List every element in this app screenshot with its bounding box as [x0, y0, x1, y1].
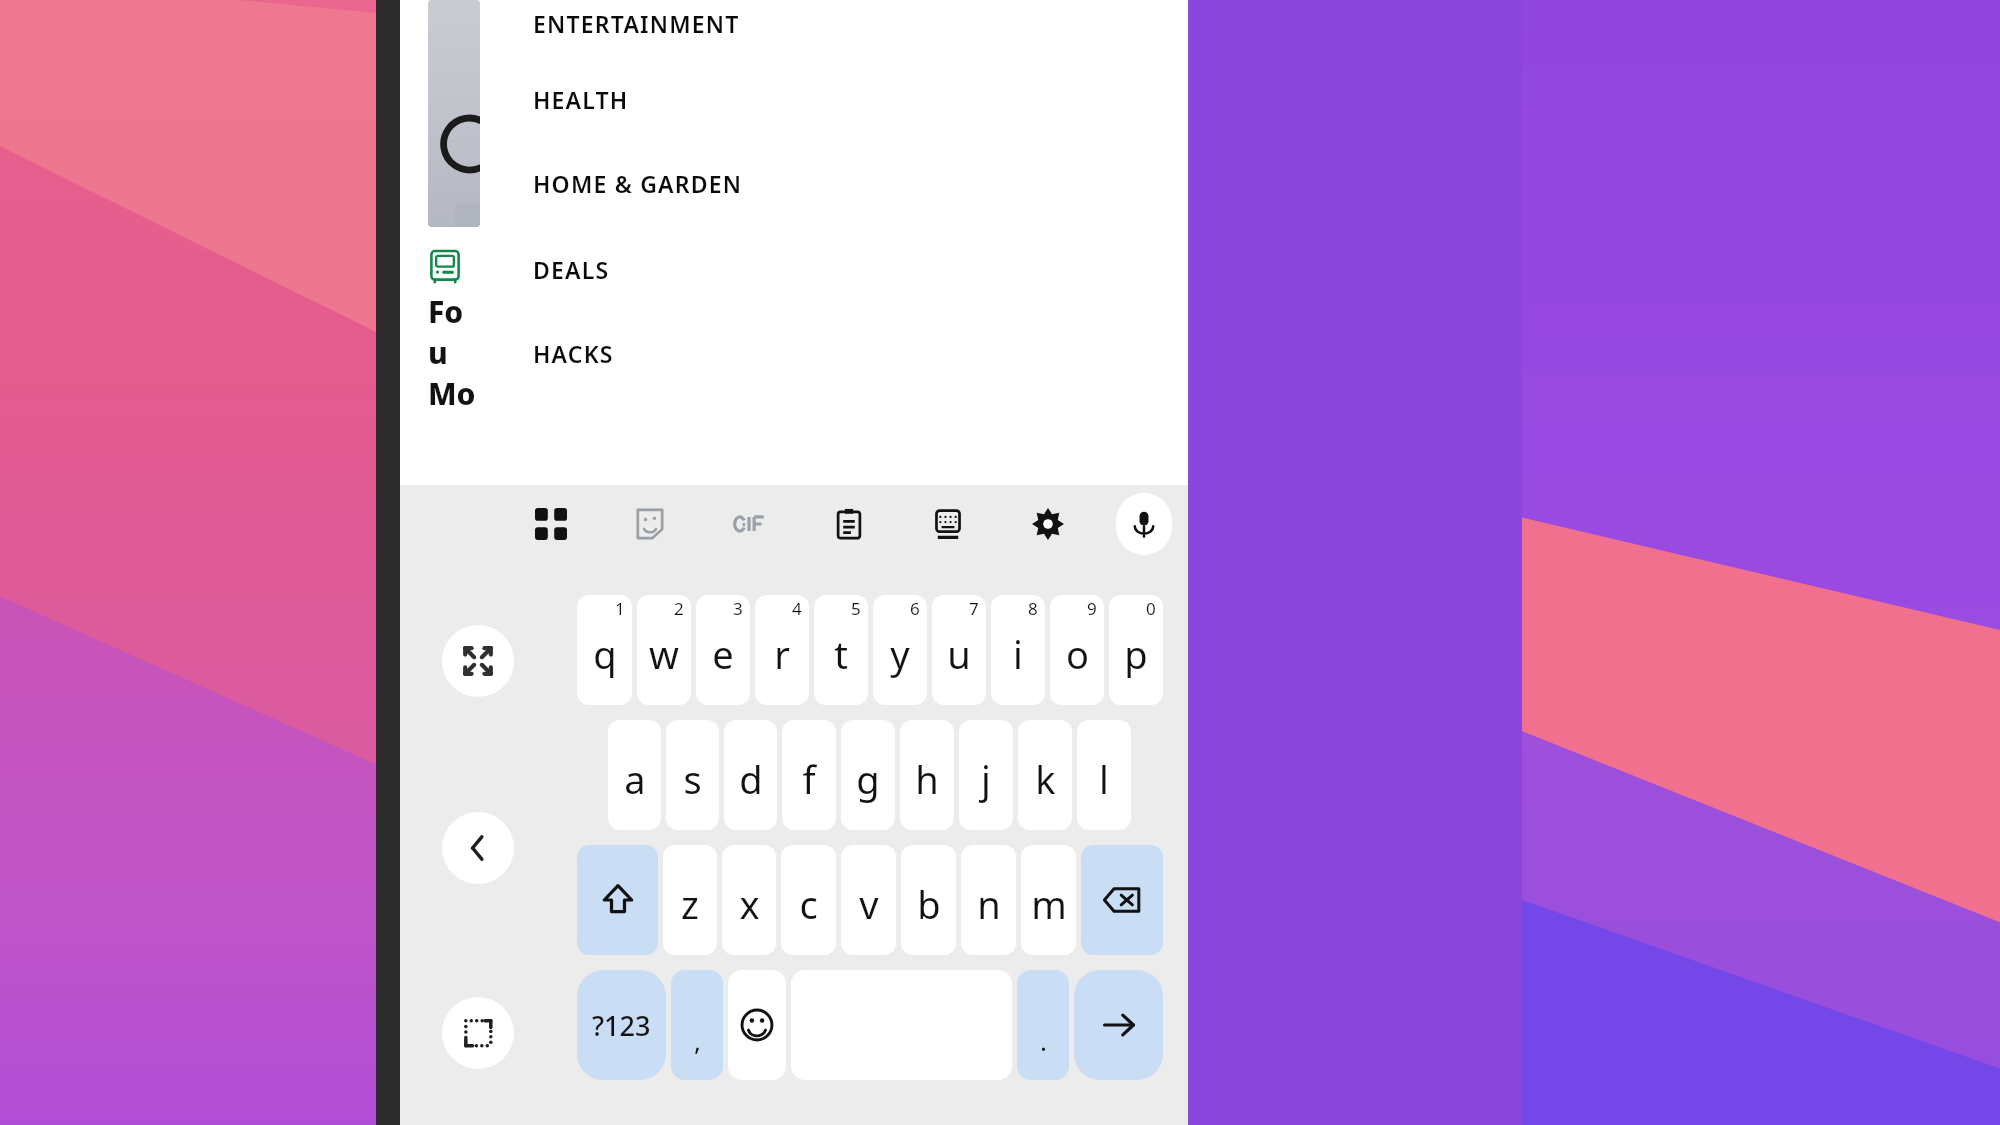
button[interactable]: r — [755, 595, 809, 705]
button[interactable]: Emoji — [728, 970, 786, 1080]
staticText: , — [694, 1023, 701, 1058]
staticText: t — [834, 628, 848, 680]
button[interactable]: o — [1050, 595, 1104, 705]
button[interactable]: HEALTH — [480, 68, 1188, 130]
staticText: x — [739, 878, 760, 930]
staticText: m — [1031, 878, 1067, 930]
button[interactable]: ?123 — [577, 970, 666, 1080]
staticText: 4 — [792, 597, 802, 620]
staticText: 7 — [969, 597, 979, 620]
button[interactable]: HACKS — [480, 322, 1188, 384]
staticText: . — [1040, 1023, 1047, 1058]
button[interactable]: s — [666, 720, 719, 830]
staticText: p — [1124, 628, 1148, 680]
staticText: 3 — [733, 597, 743, 620]
staticText: 1 — [615, 597, 625, 620]
button[interactable]: . — [1017, 970, 1069, 1080]
staticText: e — [712, 628, 734, 680]
staticText: i — [1013, 628, 1023, 680]
button[interactable]: u — [932, 595, 986, 705]
staticText: k — [1035, 753, 1056, 805]
staticText: 9 — [1087, 597, 1097, 620]
staticText: b — [917, 878, 941, 930]
staticText: s — [683, 753, 702, 805]
staticText: c — [799, 878, 818, 930]
staticText: HACKS — [533, 338, 614, 369]
staticText: n — [977, 878, 1001, 930]
button[interactable]: Clipboard — [818, 493, 880, 555]
staticText: d — [739, 753, 763, 805]
button[interactable]: f — [782, 720, 836, 830]
staticText: 0 — [1146, 597, 1156, 620]
button[interactable]: j — [959, 720, 1013, 830]
button[interactable]: p — [1109, 595, 1163, 705]
button[interactable]: ENTERTAINMENT — [480, 0, 1188, 54]
button[interactable]: m — [1021, 845, 1076, 955]
staticText: DEALS — [533, 254, 610, 285]
staticText: q — [593, 628, 617, 680]
button[interactable]: Voice input — [1116, 493, 1172, 555]
staticText: ENTERTAINMENT — [533, 8, 740, 39]
button[interactable]: v — [841, 845, 896, 955]
button[interactable]: Widgets — [520, 493, 582, 555]
staticText: v — [859, 878, 879, 930]
staticText: w — [649, 628, 679, 680]
staticText: z — [681, 878, 699, 930]
staticText: o — [1066, 628, 1089, 680]
button[interactable]: x — [722, 845, 776, 955]
staticText: r — [774, 628, 790, 680]
staticText: Mo — [428, 373, 476, 414]
button[interactable]: c — [781, 845, 836, 955]
staticText: a — [624, 753, 646, 805]
staticText: h — [915, 753, 939, 805]
button[interactable]: i — [991, 595, 1045, 705]
button[interactable]: Select text — [442, 997, 514, 1069]
button[interactable]: w — [637, 595, 691, 705]
button[interactable]: n — [961, 845, 1016, 955]
button[interactable]: GIF — [719, 493, 781, 555]
button[interactable]: q — [577, 595, 632, 705]
button[interactable]: HOME & GARDEN — [480, 152, 1188, 214]
button[interactable]: Expand keyboard — [442, 625, 514, 697]
staticText: 5 — [851, 597, 861, 620]
button[interactable]: a — [608, 720, 661, 830]
button[interactable]: g — [841, 720, 895, 830]
staticText: 2 — [674, 597, 684, 620]
staticText: HOME & GARDEN — [533, 168, 743, 199]
staticText: f — [802, 753, 816, 805]
staticText: ?123 — [592, 1007, 651, 1044]
button[interactable]: Backspace — [1081, 845, 1163, 955]
button[interactable]: Shift — [577, 845, 658, 955]
button[interactable]: t — [814, 595, 868, 705]
button[interactable]: Settings — [1017, 493, 1079, 555]
button[interactable]: e — [696, 595, 750, 705]
staticText: y — [890, 628, 910, 680]
button[interactable]: Stickers — [619, 493, 681, 555]
button[interactable]: k — [1018, 720, 1072, 830]
button[interactable]: z — [663, 845, 717, 955]
staticText: u — [947, 628, 971, 680]
button[interactable]: l — [1077, 720, 1131, 830]
staticText: HEALTH — [533, 84, 629, 115]
button[interactable]: d — [724, 720, 777, 830]
staticText: 6 — [910, 597, 920, 620]
button[interactable]: h — [900, 720, 954, 830]
staticText: g — [856, 753, 880, 805]
button[interactable]: b — [901, 845, 956, 955]
button[interactable]: Enter — [1074, 970, 1163, 1080]
button[interactable]: DEALS — [480, 238, 1188, 300]
button[interactable]: , — [671, 970, 723, 1080]
staticText: j — [981, 753, 991, 805]
staticText: l — [1099, 753, 1109, 805]
staticText: Fou — [428, 291, 480, 373]
staticText: 8 — [1028, 597, 1038, 620]
button[interactable]: y — [873, 595, 927, 705]
button[interactable]: Back — [442, 812, 514, 884]
button[interactable]: One-handed — [917, 493, 979, 555]
